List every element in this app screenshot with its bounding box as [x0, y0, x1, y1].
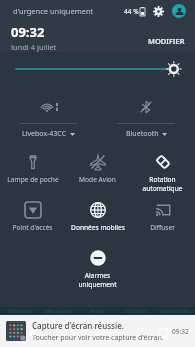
staticText: MODIFIER	[148, 36, 185, 46]
staticText: Capture d'écran réussie.	[32, 320, 124, 331]
staticText: Téléphone	[7, 308, 32, 315]
staticText: 09:32	[11, 23, 45, 41]
staticText: Alarmes uniquement	[65, 271, 130, 289]
button[interactable]: Lampe de poche	[0, 149, 65, 197]
button[interactable]: Applications récentes	[130, 321, 195, 345]
button[interactable]: Alarmes uniquement	[65, 245, 130, 293]
button[interactable]: Accueil	[65, 321, 130, 345]
button[interactable]: Rotation automatique	[130, 149, 195, 197]
staticText: Appareil pho	[160, 308, 191, 315]
button[interactable]: Luminosité	[0, 58, 195, 80]
button[interactable]: Données mobiles	[65, 197, 130, 245]
staticText: Toucher pour voir votre capture d'écran.	[32, 333, 164, 343]
staticText: Rotation automatique	[130, 175, 195, 193]
staticText: Mode Avion	[79, 175, 116, 184]
button[interactable]: Diffuser	[130, 197, 195, 245]
staticText: 44 %	[124, 7, 139, 16]
button[interactable]: Retour	[0, 321, 65, 345]
button[interactable]: Capture d'écran réussie.	[0, 315, 195, 347]
staticText: Diffuser	[150, 223, 175, 232]
button[interactable]: Wi-Fi	[0, 91, 97, 123]
button[interactable]: Bluetooth	[97, 91, 195, 123]
staticText: Point d'accès	[12, 223, 53, 232]
button[interactable]: Livebox-43CC	[0, 124, 97, 143]
staticText: Contacts	[126, 308, 147, 315]
staticText: Messagerie	[45, 308, 73, 315]
staticText: lundi 4 juillet	[11, 42, 57, 52]
button[interactable]: MODIFIER	[146, 34, 187, 48]
staticText: Données mobiles	[71, 223, 125, 232]
staticText: 09:32	[172, 327, 189, 336]
button[interactable]: Bluetooth	[97, 124, 195, 143]
button[interactable]: Mode Avion	[65, 149, 130, 197]
staticText: Arrêts	[90, 308, 105, 315]
staticText: Livebox-43CC	[22, 129, 67, 139]
button[interactable]: Paramètres	[152, 5, 165, 18]
button[interactable]: Point d'accès	[0, 197, 65, 245]
button[interactable]: Utilisateur	[172, 4, 186, 18]
staticText: d'urgence uniquement	[13, 6, 94, 16]
staticText: Lampe de poche	[7, 175, 59, 184]
staticText: Bluetooth	[126, 129, 159, 139]
